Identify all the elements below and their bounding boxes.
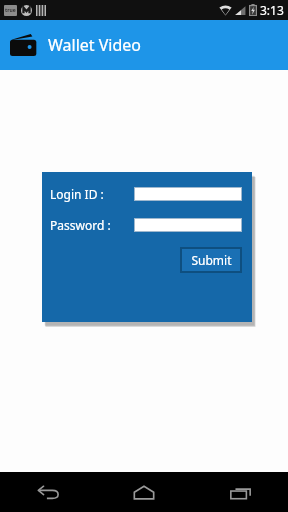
button[interactable]: Recent apps <box>192 472 288 512</box>
staticText: Wallet Video <box>48 34 142 56</box>
staticText: 3:13 <box>260 2 284 18</box>
button[interactable]: Back <box>0 472 96 512</box>
staticText: Submit <box>191 252 232 268</box>
other: Wallet Video app icon <box>9 30 39 60</box>
staticText: Login ID : <box>50 186 104 202</box>
staticText: Password : <box>50 217 111 233</box>
staticText: true <box>5 7 16 14</box>
button[interactable]: Submit <box>182 249 240 271</box>
button[interactable]: Home <box>96 472 192 512</box>
